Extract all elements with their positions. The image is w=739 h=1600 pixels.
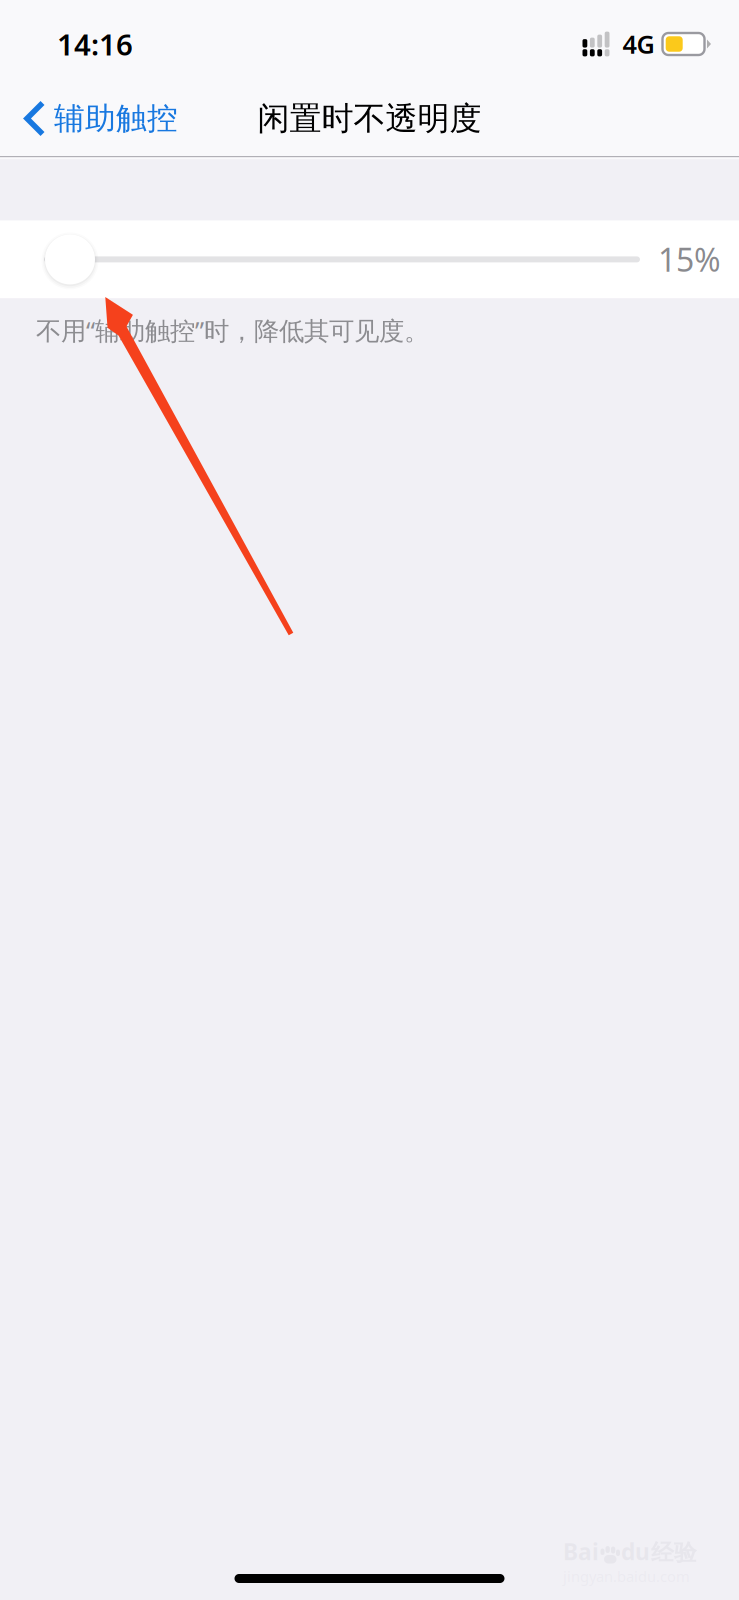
- staticText: Bai: [563, 1536, 599, 1566]
- button[interactable]: 辅助触控: [0, 88, 192, 156]
- staticText: 不用“辅助触控”时，降低其可见度。: [36, 314, 429, 347]
- staticText: du: [621, 1536, 650, 1566]
- staticText: 4G: [622, 27, 654, 61]
- button[interactable]: 不透明度滑块: [41, 230, 99, 288]
- staticText: 14:16: [57, 24, 133, 63]
- staticText: 经验: [651, 1539, 697, 1566]
- staticText: 闲置时不透明度: [257, 99, 481, 138]
- staticText: 辅助触控: [54, 100, 178, 137]
- staticText: 15%: [658, 238, 721, 281]
